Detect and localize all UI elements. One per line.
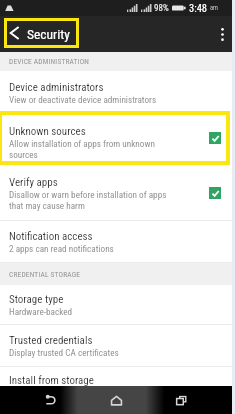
button[interactable]: Device administrators xyxy=(0,71,235,112)
staticText: Verify apps xyxy=(9,176,58,189)
staticText: Notification access xyxy=(9,230,93,243)
staticText: Disallow or warn before installation of … xyxy=(9,189,177,211)
button[interactable]: Checkbox, checked xyxy=(209,132,221,144)
button[interactable]: Home xyxy=(95,386,138,414)
staticText: DEVICE ADMINISTRATION xyxy=(9,57,90,66)
button[interactable]: Storage type xyxy=(0,285,235,325)
staticText: Unknown sources xyxy=(9,125,86,138)
button[interactable]: Notification access xyxy=(0,221,235,263)
staticText: Install from storage xyxy=(9,374,94,387)
button[interactable]: Navigate up xyxy=(7,21,76,45)
staticText: Display trusted CA certificates xyxy=(9,347,119,358)
staticText: am xyxy=(210,4,219,12)
button[interactable]: Back xyxy=(29,386,72,414)
staticText: CREDENTIAL STORAGE xyxy=(9,270,81,279)
staticText: Allow installation of apps from unknown … xyxy=(9,138,177,160)
staticText: Hardware-backed xyxy=(9,306,73,317)
button[interactable]: Unknown sources xyxy=(0,115,230,161)
button[interactable]: More options xyxy=(209,16,235,52)
button[interactable]: Install from storage xyxy=(0,367,235,386)
staticText: Device administrators xyxy=(9,81,104,94)
button[interactable]: Verify apps xyxy=(0,165,235,221)
button[interactable] xyxy=(0,112,235,165)
staticText: 98% xyxy=(154,3,169,14)
button[interactable]: Checkbox, checked xyxy=(209,187,221,199)
staticText: 3:48 xyxy=(189,2,208,14)
staticText: Storage type xyxy=(9,293,64,306)
button[interactable]: Trusted credentials xyxy=(0,325,235,367)
staticText: Trusted credentials xyxy=(9,334,93,347)
staticText: Security xyxy=(27,26,70,42)
staticText: View or deactivate device administrators xyxy=(9,94,157,105)
button[interactable]: Recent apps xyxy=(160,386,203,414)
staticText: 2 apps can read notifications xyxy=(9,243,114,254)
